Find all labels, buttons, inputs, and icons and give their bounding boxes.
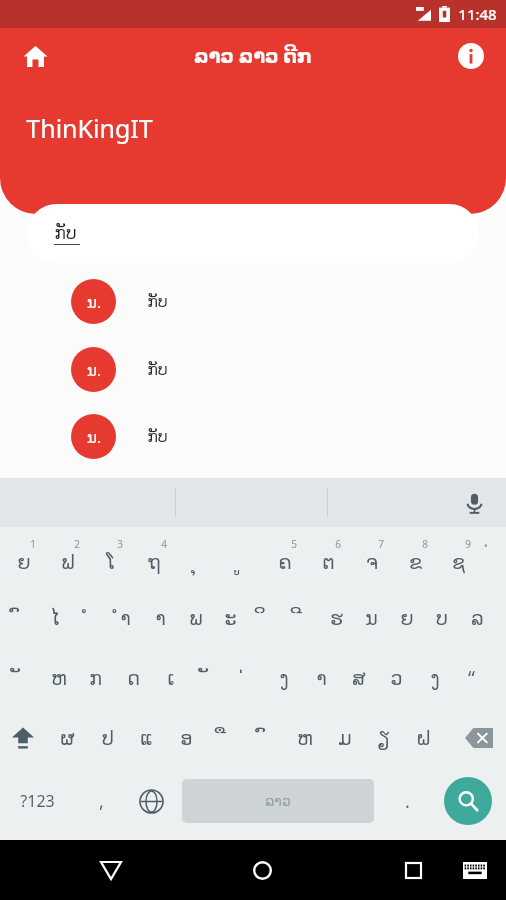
button[interactable]: Home <box>12 33 58 79</box>
button[interactable]: ິ <box>248 589 283 647</box>
button[interactable]: . <box>384 771 430 831</box>
button[interactable]: ຫ <box>40 649 77 707</box>
button[interactable]: ພ <box>178 589 213 647</box>
button[interactable]: ຫ <box>285 709 324 767</box>
button[interactable]: Backspace <box>455 709 503 767</box>
staticText: ະ <box>224 607 237 629</box>
button[interactable]: ຄ <box>263 529 306 587</box>
button[interactable]: ສ <box>340 649 377 707</box>
button[interactable]: ຳ <box>108 589 143 647</box>
button[interactable]: , <box>78 771 124 831</box>
button[interactable]: ຂ <box>394 529 437 587</box>
button[interactable]: ຜ <box>48 709 87 767</box>
staticText: ງ <box>430 667 440 689</box>
button[interactable]: ດ <box>115 649 152 707</box>
button[interactable]: ະ <box>213 589 248 647</box>
button[interactable]: ລາວ <box>182 779 374 823</box>
button[interactable]: ມ <box>325 709 364 767</box>
staticText: ຂ <box>409 551 422 573</box>
button[interactable]: Search <box>444 777 492 825</box>
button[interactable]: ັ <box>190 649 227 707</box>
button[interactable]: ຮ <box>319 589 354 647</box>
button[interactable]: ຽ <box>364 709 403 767</box>
button[interactable]: ຍ <box>2 529 45 587</box>
button[interactable]: ງ <box>416 649 453 707</box>
staticText: ຳ <box>120 607 131 629</box>
staticText: 6 <box>335 537 341 551</box>
button[interactable]: Home <box>237 845 287 895</box>
staticText: ເ <box>167 667 175 689</box>
button[interactable]: ື <box>206 709 245 767</box>
button[interactable]: ວ <box>378 649 415 707</box>
button[interactable]: ຊ <box>437 529 480 587</box>
button[interactable]: ນ. <box>47 267 459 335</box>
button[interactable]: Back <box>86 845 136 895</box>
staticText: ຫ <box>297 727 313 749</box>
button[interactable]: ໍ <box>72 589 107 647</box>
staticText: , <box>99 789 104 814</box>
button[interactable]: Change language <box>128 771 174 831</box>
staticText: ກັບ <box>54 223 77 243</box>
button[interactable]: “ <box>453 649 490 707</box>
button[interactable]: ອ <box>167 709 206 767</box>
staticText: ແ <box>140 727 153 749</box>
staticText: ກັບ <box>147 427 168 446</box>
staticText: 2 <box>74 537 80 551</box>
button[interactable]: Information <box>448 33 494 79</box>
staticText: • <box>484 539 488 553</box>
staticText: 7 <box>378 537 384 551</box>
button[interactable]: ນ. <box>47 403 459 470</box>
button[interactable]: ບ <box>424 589 459 647</box>
staticText: 1 <box>30 537 36 551</box>
button[interactable]: ນ. <box>47 335 459 403</box>
staticText: ບ <box>436 607 448 629</box>
button[interactable]: ໂ <box>89 529 132 587</box>
staticText: ຮ <box>330 607 343 629</box>
staticText: ?123 <box>20 790 55 812</box>
button[interactable]: ົ <box>246 709 285 767</box>
staticText: ຕ <box>322 551 335 573</box>
button[interactable]: າ <box>143 589 178 647</box>
staticText: ຊ <box>452 551 465 573</box>
staticText: ສ <box>352 667 366 689</box>
button[interactable]: ກັບ <box>27 204 479 263</box>
button[interactable]: ູ <box>220 529 263 587</box>
button[interactable]: ງ <box>265 649 302 707</box>
button[interactable]: ຸ <box>176 529 219 587</box>
button[interactable]: ເ <box>152 649 189 707</box>
button[interactable]: າ <box>303 649 340 707</box>
button[interactable]: ?123 <box>4 771 70 831</box>
staticText: 9 <box>465 537 471 551</box>
staticText: ປ <box>102 727 114 749</box>
button[interactable]: ຍ <box>389 589 424 647</box>
button[interactable]: ັ <box>2 649 39 707</box>
button[interactable]: ົ <box>2 589 37 647</box>
staticText: “ <box>468 665 475 691</box>
button[interactable]: ຝ <box>404 709 443 767</box>
button[interactable]: Recent apps <box>388 845 438 895</box>
staticText: ໂ <box>106 551 115 573</box>
button[interactable]: ຕ <box>307 529 350 587</box>
button[interactable]: Voice input <box>455 484 493 522</box>
button[interactable]: ນ <box>354 589 389 647</box>
button[interactable]: ີ <box>284 589 319 647</box>
staticText: 11:48 <box>458 4 497 24</box>
staticText: ຫ <box>51 667 67 689</box>
button[interactable]: Shift <box>0 709 46 767</box>
button[interactable]: ແ <box>127 709 166 767</box>
button[interactable]: ຖ <box>133 529 176 587</box>
button[interactable]: ລ <box>460 589 495 647</box>
button[interactable]: Switch keyboard <box>452 847 498 893</box>
button[interactable]: ຟ <box>46 529 89 587</box>
button[interactable]: ໄ <box>37 589 72 647</box>
button[interactable]: ປ <box>88 709 127 767</box>
staticText: ຝ <box>416 727 431 749</box>
button[interactable]: ຈ <box>350 529 393 587</box>
button[interactable]: ກ <box>77 649 114 707</box>
staticText: ງ <box>279 667 289 689</box>
staticText: ຍ <box>17 551 31 573</box>
staticText: າ <box>316 667 327 689</box>
staticText: ມ <box>338 727 352 749</box>
staticText: ຈ <box>366 551 378 573</box>
button[interactable]: ່ <box>228 649 265 707</box>
